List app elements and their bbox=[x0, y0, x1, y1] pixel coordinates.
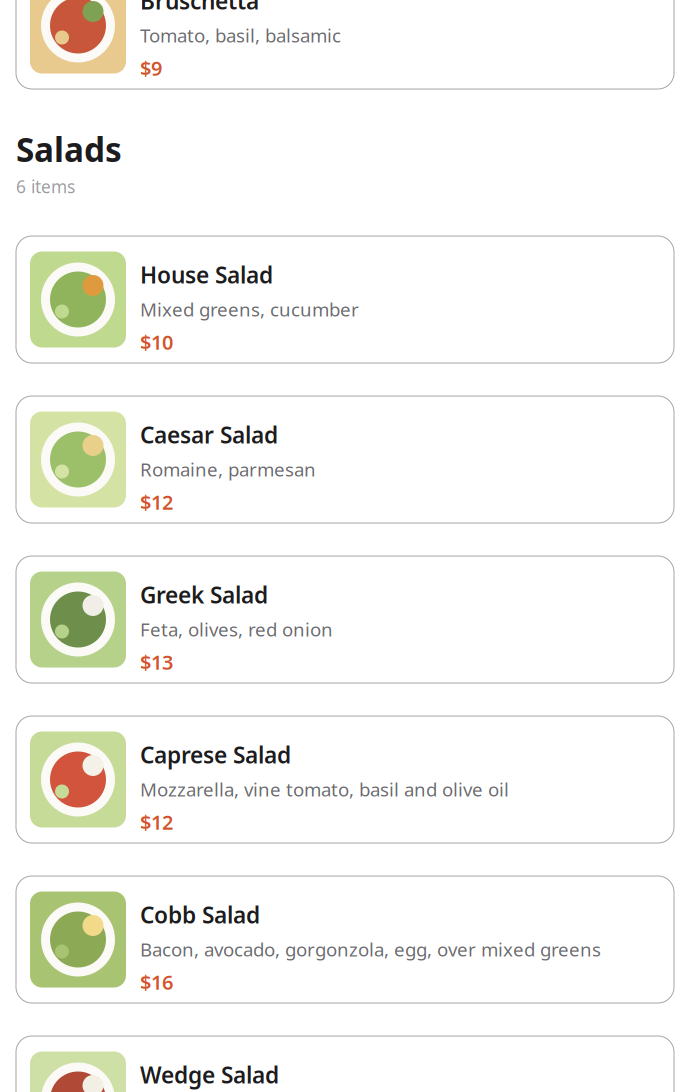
staticText: Romaine, parmesan bbox=[140, 457, 316, 482]
button[interactable]: Cobb Salad bbox=[16, 876, 674, 1003]
staticText: $16 bbox=[140, 969, 173, 995]
staticText: Mixed greens, cucumber bbox=[140, 297, 359, 322]
staticText: Feta, olives, red onion bbox=[140, 617, 333, 642]
staticText: Cobb Salad bbox=[140, 900, 260, 930]
button[interactable]: Wedge Salad bbox=[16, 1036, 674, 1092]
staticText: Wedge Salad bbox=[140, 1060, 279, 1090]
staticText: $9 bbox=[140, 55, 162, 81]
staticText: Caprese Salad bbox=[140, 740, 291, 770]
staticText: Bruschetta bbox=[140, 0, 259, 16]
staticText: $10 bbox=[140, 329, 173, 355]
staticText: $12 bbox=[140, 809, 173, 835]
staticText: $13 bbox=[140, 649, 173, 675]
staticText: Salads bbox=[16, 127, 122, 171]
button[interactable]: House Salad bbox=[16, 236, 674, 363]
staticText: House Salad bbox=[140, 260, 273, 290]
button[interactable]: Greek Salad bbox=[16, 556, 674, 683]
staticText: Caesar Salad bbox=[140, 420, 278, 450]
staticText: Bacon, avocado, gorgonzola, egg, over mi… bbox=[140, 937, 601, 962]
staticText: 6 items bbox=[16, 175, 75, 198]
button[interactable]: Caesar Salad bbox=[16, 396, 674, 523]
staticText: Tomato, basil, balsamic bbox=[140, 23, 341, 48]
staticText: Mozzarella, vine tomato, basil and olive… bbox=[140, 777, 509, 802]
button[interactable]: Bruschetta bbox=[16, 0, 674, 89]
staticText: Greek Salad bbox=[140, 580, 268, 610]
staticText: $12 bbox=[140, 489, 173, 515]
button[interactable]: Caprese Salad bbox=[16, 716, 674, 843]
